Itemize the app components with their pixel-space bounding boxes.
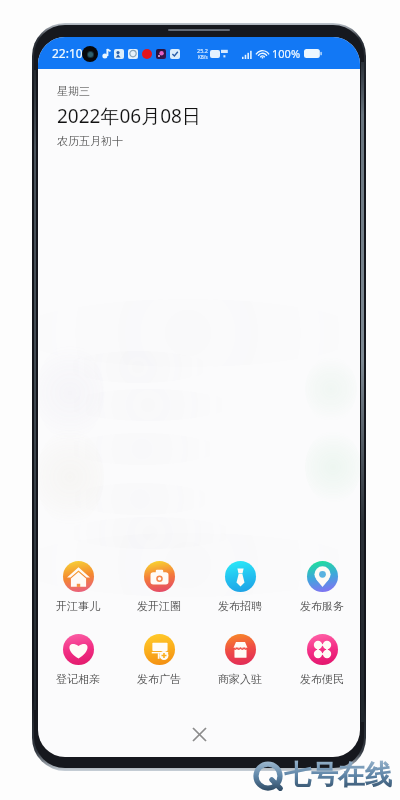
staticText: 登记相亲 [56, 672, 100, 686]
button[interactable]: 登记相亲 [45, 634, 111, 686]
staticText: 七号在线 [284, 758, 392, 792]
staticText: KB/s [198, 54, 208, 60]
button[interactable]: Close [185, 720, 213, 748]
staticText: 星期三 [57, 84, 90, 98]
staticText: 发布广告 [137, 672, 181, 686]
staticText: 农历五月初十 [57, 134, 123, 148]
button[interactable]: 发布招聘 [207, 561, 273, 613]
staticText: 发开江圈 [137, 599, 181, 613]
staticText: 开江事儿 [56, 599, 100, 613]
staticText: 发布服务 [300, 599, 344, 613]
staticText: 2022年06月08日 [57, 103, 201, 129]
staticText: 100% [272, 46, 301, 61]
button[interactable]: 发开江圈 [126, 561, 192, 613]
staticText: 发布招聘 [218, 599, 262, 613]
button[interactable]: 发布服务 [289, 561, 355, 613]
button[interactable]: 开江事儿 [45, 561, 111, 613]
staticText: 22:10 [52, 45, 83, 61]
staticText: 发布便民 [300, 672, 344, 686]
staticText: 商家入驻 [218, 672, 262, 686]
button[interactable]: 发布广告 [126, 634, 192, 686]
button[interactable]: 商家入驻 [207, 634, 273, 686]
staticText: 25.2 [197, 47, 208, 54]
button[interactable]: 发布便民 [289, 634, 355, 686]
